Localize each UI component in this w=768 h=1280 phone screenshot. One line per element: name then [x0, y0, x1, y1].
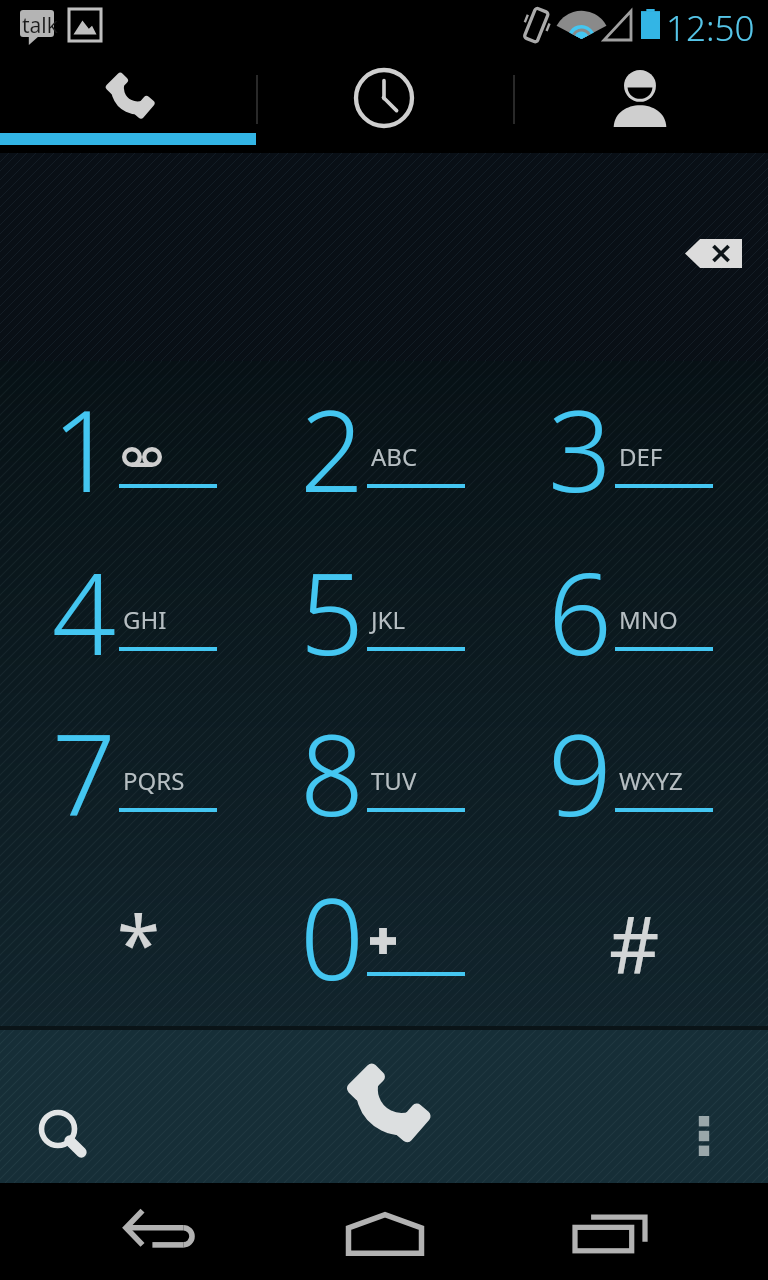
- button[interactable]: Call: [325, 1047, 445, 1167]
- staticText: WXYZ: [619, 764, 683, 797]
- staticText: 6: [548, 535, 612, 688]
- button[interactable]: 5: [248, 569, 496, 737]
- button[interactable]: 4: [0, 569, 248, 737]
- button[interactable]: 0: [248, 894, 496, 1062]
- staticText: GHI: [123, 603, 167, 636]
- button[interactable]: 1: [0, 406, 248, 574]
- button[interactable]: 6: [496, 569, 744, 737]
- staticText: *: [117, 890, 160, 996]
- staticText: JKL: [371, 603, 405, 636]
- staticText: 4: [52, 535, 116, 688]
- staticText: talk: [22, 11, 58, 40]
- staticText: 1: [52, 372, 116, 525]
- button[interactable]: #: [496, 894, 744, 1062]
- button[interactable]: Call log: [256, 52, 512, 144]
- button[interactable]: 8: [248, 730, 496, 898]
- staticText: PQRS: [123, 764, 185, 797]
- staticText: 3: [548, 372, 612, 525]
- button[interactable]: More options: [654, 1086, 754, 1186]
- staticText: 0: [300, 860, 364, 1013]
- button[interactable]: Dialer: [0, 52, 256, 144]
- button[interactable]: 9: [496, 730, 744, 898]
- staticText: 9: [548, 696, 612, 849]
- button[interactable]: Recents: [521, 1183, 699, 1280]
- button[interactable]: 7: [0, 730, 248, 898]
- staticText: TUV: [371, 764, 417, 797]
- button[interactable]: 2: [248, 406, 496, 574]
- staticText: MNO: [619, 603, 678, 636]
- button[interactable]: Backspace: [673, 225, 753, 281]
- button[interactable]: Home: [296, 1183, 474, 1280]
- button[interactable]: Search: [8, 1079, 108, 1179]
- staticText: 7: [52, 696, 116, 849]
- staticText: 5: [300, 535, 364, 688]
- staticText: ABC: [371, 440, 418, 473]
- staticText: 2: [300, 372, 364, 525]
- button[interactable]: 3: [496, 406, 744, 574]
- staticText: #: [609, 890, 660, 996]
- button[interactable]: Contacts: [512, 52, 768, 144]
- button[interactable]: Back: [70, 1183, 248, 1280]
- staticText: 12:50: [666, 4, 755, 52]
- button[interactable]: *: [0, 894, 248, 1062]
- staticText: DEF: [619, 440, 663, 473]
- staticText: 8: [300, 696, 364, 849]
